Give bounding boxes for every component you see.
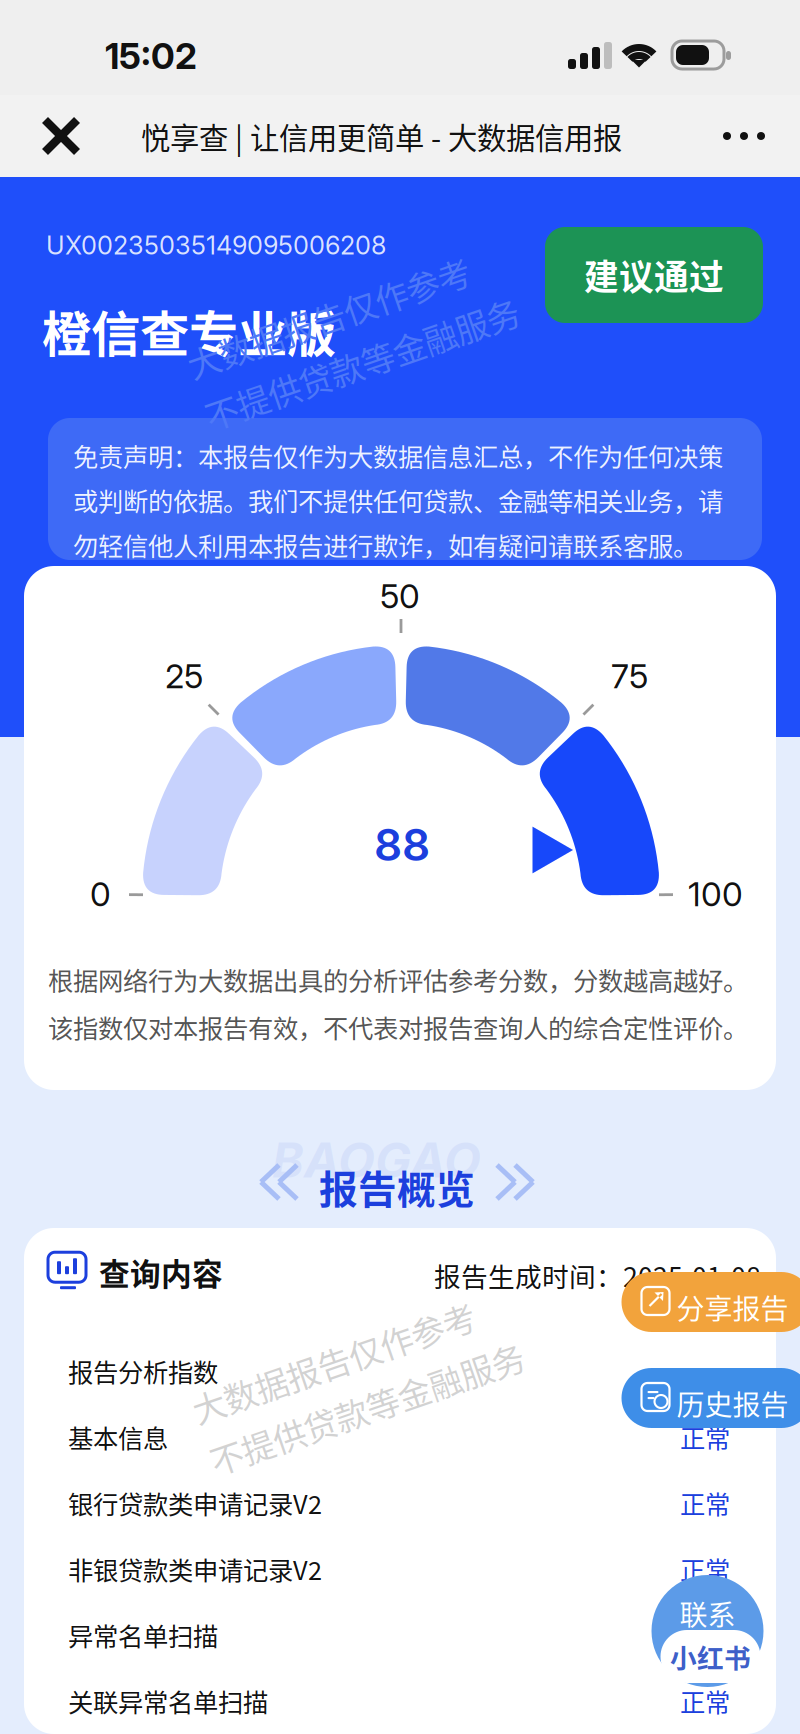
- staticText: 正常: [680, 1551, 730, 1587]
- staticText: 根据网络行为大数据出具的分析评估参考分数，分数越高越好。该指数仅对本报告有效，不…: [48, 961, 748, 1045]
- staticText: 0: [90, 874, 111, 914]
- staticText: 正常: [680, 1485, 730, 1521]
- staticText: 查询内容: [99, 1250, 223, 1294]
- staticText: 非银贷款类申请记录V2: [68, 1551, 322, 1587]
- button[interactable]: 银行贷款类申请记录V2: [24, 1470, 776, 1536]
- staticText: 不提供贷款等金融服务: [190, 1384, 520, 1433]
- staticText: 25: [165, 656, 203, 696]
- staticText: 报告生成时间：2025-01-08: [434, 1256, 761, 1295]
- button[interactable]: 关联异常名单扫描: [24, 1668, 776, 1734]
- staticText: 联系: [679, 1593, 735, 1633]
- button[interactable]: 历史报告: [621, 1368, 800, 1428]
- staticText: 免责声明：本报告仅作为大数据信息汇总，不作为任何决策或判断的依据。我们不提供任何…: [73, 437, 723, 563]
- staticText: 建议通过: [584, 250, 724, 300]
- staticText: 报告概览: [319, 1159, 475, 1215]
- staticText: 正常: [680, 1419, 730, 1455]
- button[interactable]: 报告分析指数: [24, 1338, 776, 1404]
- staticText: 大数据报告仅作参考: [185, 285, 482, 333]
- staticText: 大数据报告仅作参考: [190, 1330, 487, 1378]
- staticText: 分享报告: [676, 1287, 788, 1327]
- staticText: 客服: [679, 1637, 735, 1678]
- staticText: 关联异常名单扫描: [68, 1683, 268, 1719]
- staticText: 橙信查专业版: [42, 295, 336, 366]
- button[interactable]: 基本信息: [24, 1404, 776, 1470]
- button[interactable]: 分享报告: [621, 1272, 800, 1332]
- staticText: 50: [380, 576, 420, 616]
- staticText: 小红书: [670, 1637, 751, 1676]
- button[interactable]: More options: [716, 113, 772, 159]
- staticText: 银行贷款类申请记录V2: [68, 1485, 322, 1521]
- staticText: 75: [611, 656, 648, 696]
- button[interactable]: 联系客服: [651, 1575, 763, 1687]
- staticText: 100: [688, 874, 743, 914]
- staticText: BAOGAO: [272, 1131, 481, 1189]
- button[interactable]: 非银贷款类申请记录V2: [24, 1536, 776, 1602]
- button[interactable]: Close: [36, 111, 86, 161]
- staticText: 15:02: [105, 34, 197, 78]
- staticText: UX00235035149095006208: [46, 230, 386, 261]
- staticText: 基本信息: [68, 1419, 168, 1455]
- staticText: 不提供贷款等金融服务: [185, 339, 515, 388]
- button[interactable]: 异常名单扫描: [24, 1602, 776, 1668]
- button[interactable]: 建议通过: [545, 227, 763, 323]
- staticText: 88: [374, 818, 430, 871]
- staticText: 报告分析指数: [68, 1353, 218, 1389]
- staticText: 正常: [680, 1683, 730, 1719]
- staticText: 历史报告: [676, 1383, 788, 1423]
- staticText: 悦享查 | 让信用更简单 - 大数据信用报: [141, 115, 622, 157]
- staticText: 异常名单扫描: [68, 1617, 218, 1653]
